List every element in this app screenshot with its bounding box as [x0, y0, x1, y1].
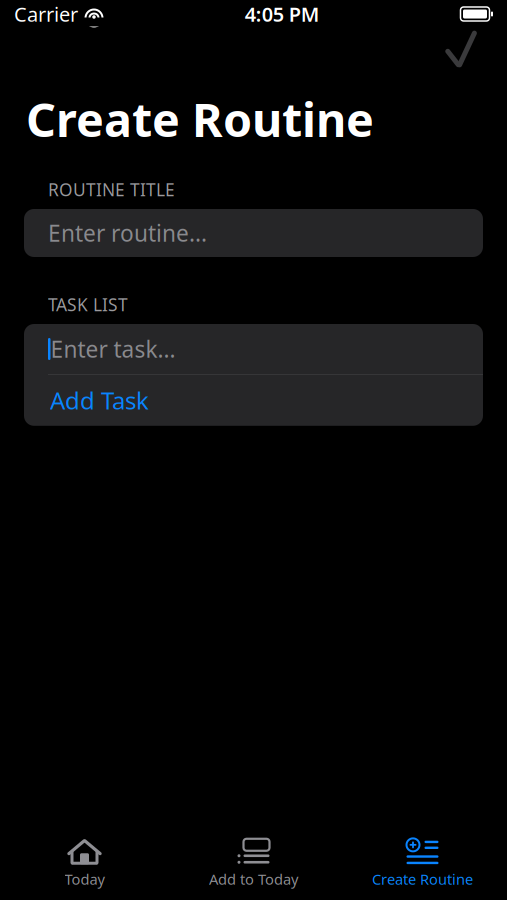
staticText: Enter task...: [50, 334, 175, 364]
staticText: Create Routine: [26, 88, 374, 150]
staticText: TASK LIST: [48, 293, 128, 316]
staticText: Create Routine: [372, 869, 473, 889]
button[interactable]: Add Task: [24, 375, 483, 426]
staticText: Enter routine...: [48, 218, 207, 248]
button[interactable]: Add to Today: [169, 832, 338, 894]
staticText: Carrier: [14, 1, 78, 27]
staticText: Add Task: [50, 384, 149, 416]
button[interactable]: Save Routine: [435, 29, 489, 75]
button[interactable]: Create Routine: [338, 832, 507, 894]
staticText: 4:05 PM: [245, 1, 320, 27]
button[interactable]: Today: [0, 832, 169, 894]
staticText: ROUTINE TITLE: [48, 178, 175, 201]
staticText: Add to Today: [209, 869, 298, 889]
staticText: Today: [64, 869, 104, 889]
